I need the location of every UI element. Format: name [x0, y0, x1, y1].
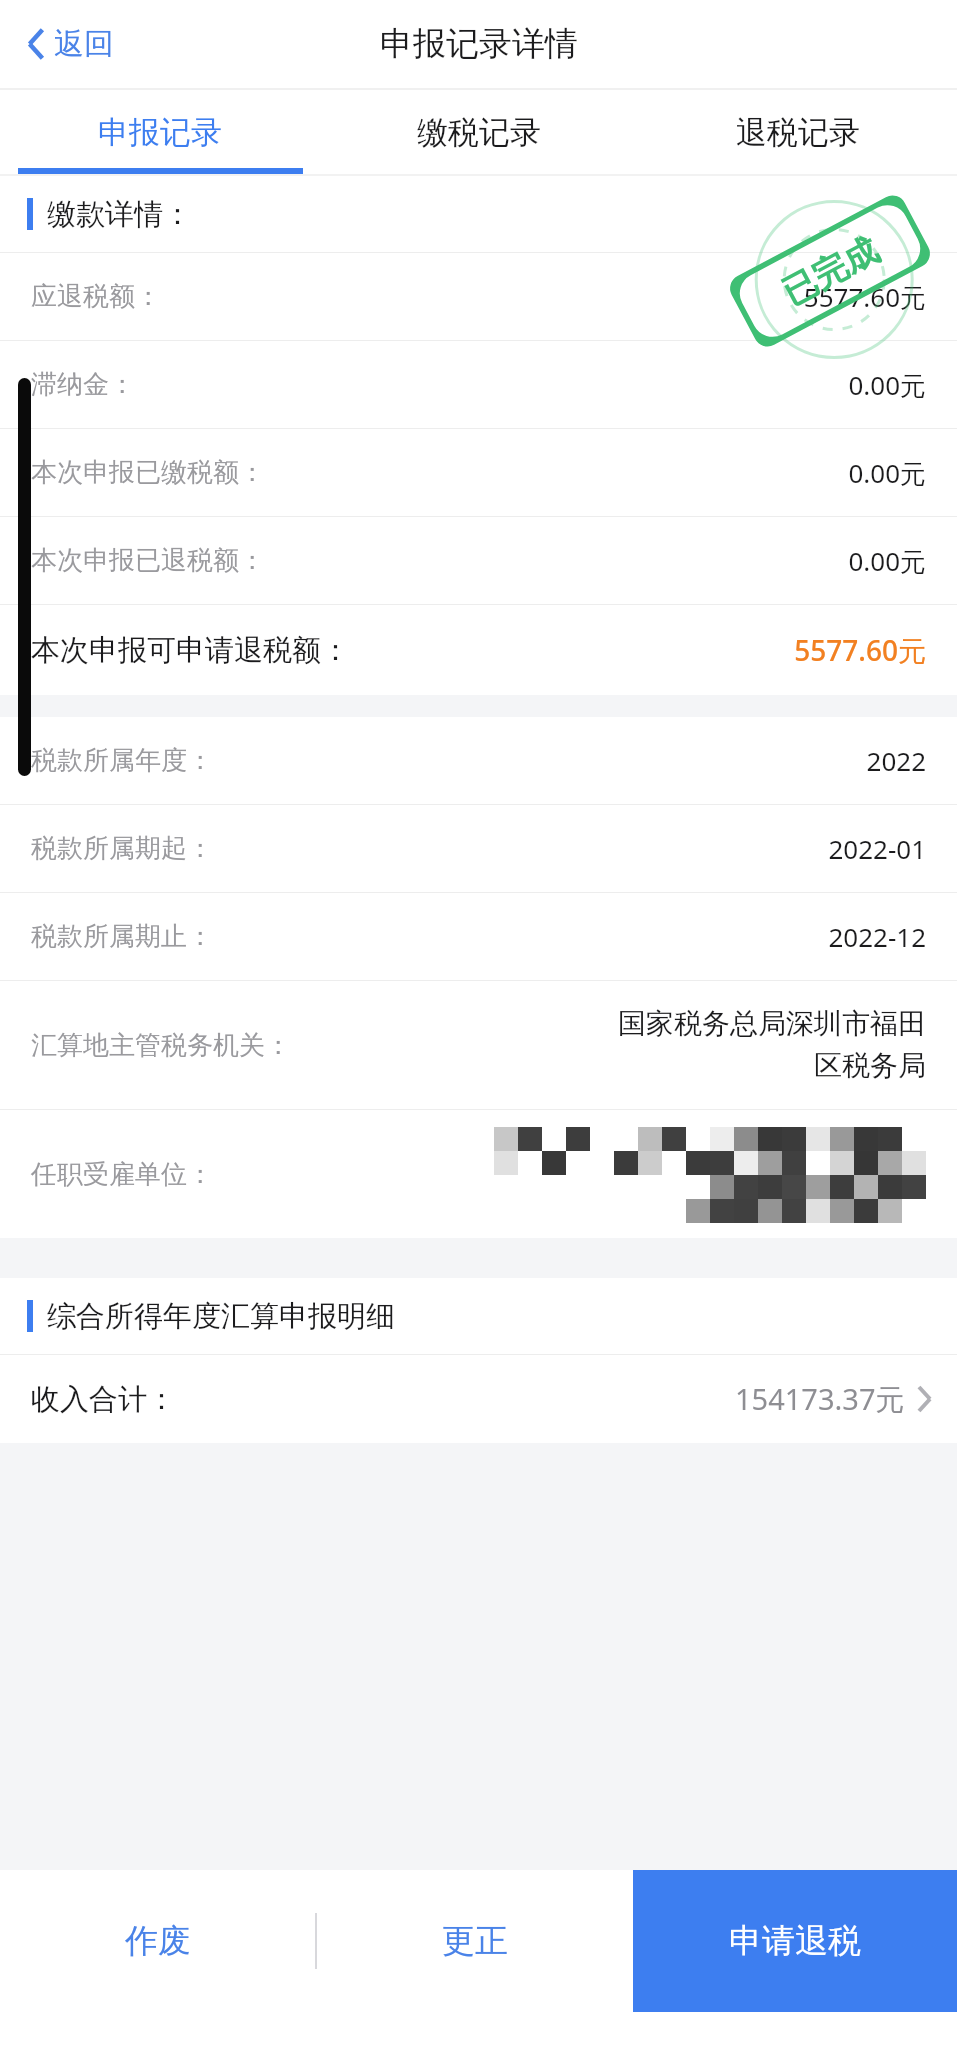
staticText: 国家税务总局深圳市福田 区税务局	[618, 1006, 926, 1084]
staticText: 缴款详情：	[47, 196, 192, 233]
button[interactable]: 作废	[0, 1870, 315, 2012]
button[interactable]: 返回	[0, 0, 132, 88]
staticText: 任职受雇单位：	[31, 1158, 213, 1191]
staticText: 申报记录	[98, 113, 222, 152]
staticText: 税款所属年度：	[31, 744, 213, 777]
button[interactable]: 缴税记录	[319, 90, 638, 174]
staticText: 已完成	[775, 228, 885, 314]
staticText: 0.00元	[848, 455, 926, 491]
staticText: 申报记录详情	[380, 23, 578, 65]
staticText: 5577.60元	[794, 631, 926, 669]
staticText: 作废	[125, 1920, 191, 1962]
button[interactable]: 退税记录	[638, 90, 957, 174]
button[interactable]: 更正	[317, 1870, 633, 2012]
button[interactable]: 收入合计：	[0, 1355, 957, 1443]
staticText: 5577.60元	[803, 279, 926, 315]
staticText: 收入合计：	[31, 1381, 176, 1418]
staticText: 滞纳金：	[31, 368, 135, 401]
staticText: 2022	[866, 743, 926, 778]
staticText: 2022-12	[828, 919, 926, 954]
staticText: 0.00元	[848, 367, 926, 403]
staticText: 税款所属期止：	[31, 920, 213, 953]
button[interactable]: 申请退税	[633, 1870, 957, 2012]
staticText: 0.00元	[848, 543, 926, 579]
staticText: 154173.37元	[735, 1379, 905, 1419]
staticText: 更正	[442, 1920, 508, 1962]
staticText: 应退税额：	[31, 280, 161, 313]
staticText: 本次申报已退税额：	[31, 544, 265, 577]
staticText: 本次申报可申请退税额：	[31, 632, 350, 669]
staticText: 缴税记录	[417, 113, 541, 152]
staticText: 返回	[54, 25, 114, 63]
staticText: 退税记录	[736, 113, 860, 152]
staticText: 汇算地主管税务机关：	[31, 1029, 291, 1062]
staticText: 申请退税	[729, 1920, 861, 1962]
staticText: 税款所属期起：	[31, 832, 213, 865]
button[interactable]: 申报记录	[0, 90, 319, 174]
staticText: 本次申报已缴税额：	[31, 456, 265, 489]
staticText: 2022-01	[828, 831, 926, 866]
staticText: 综合所得年度汇算申报明细	[47, 1298, 395, 1335]
